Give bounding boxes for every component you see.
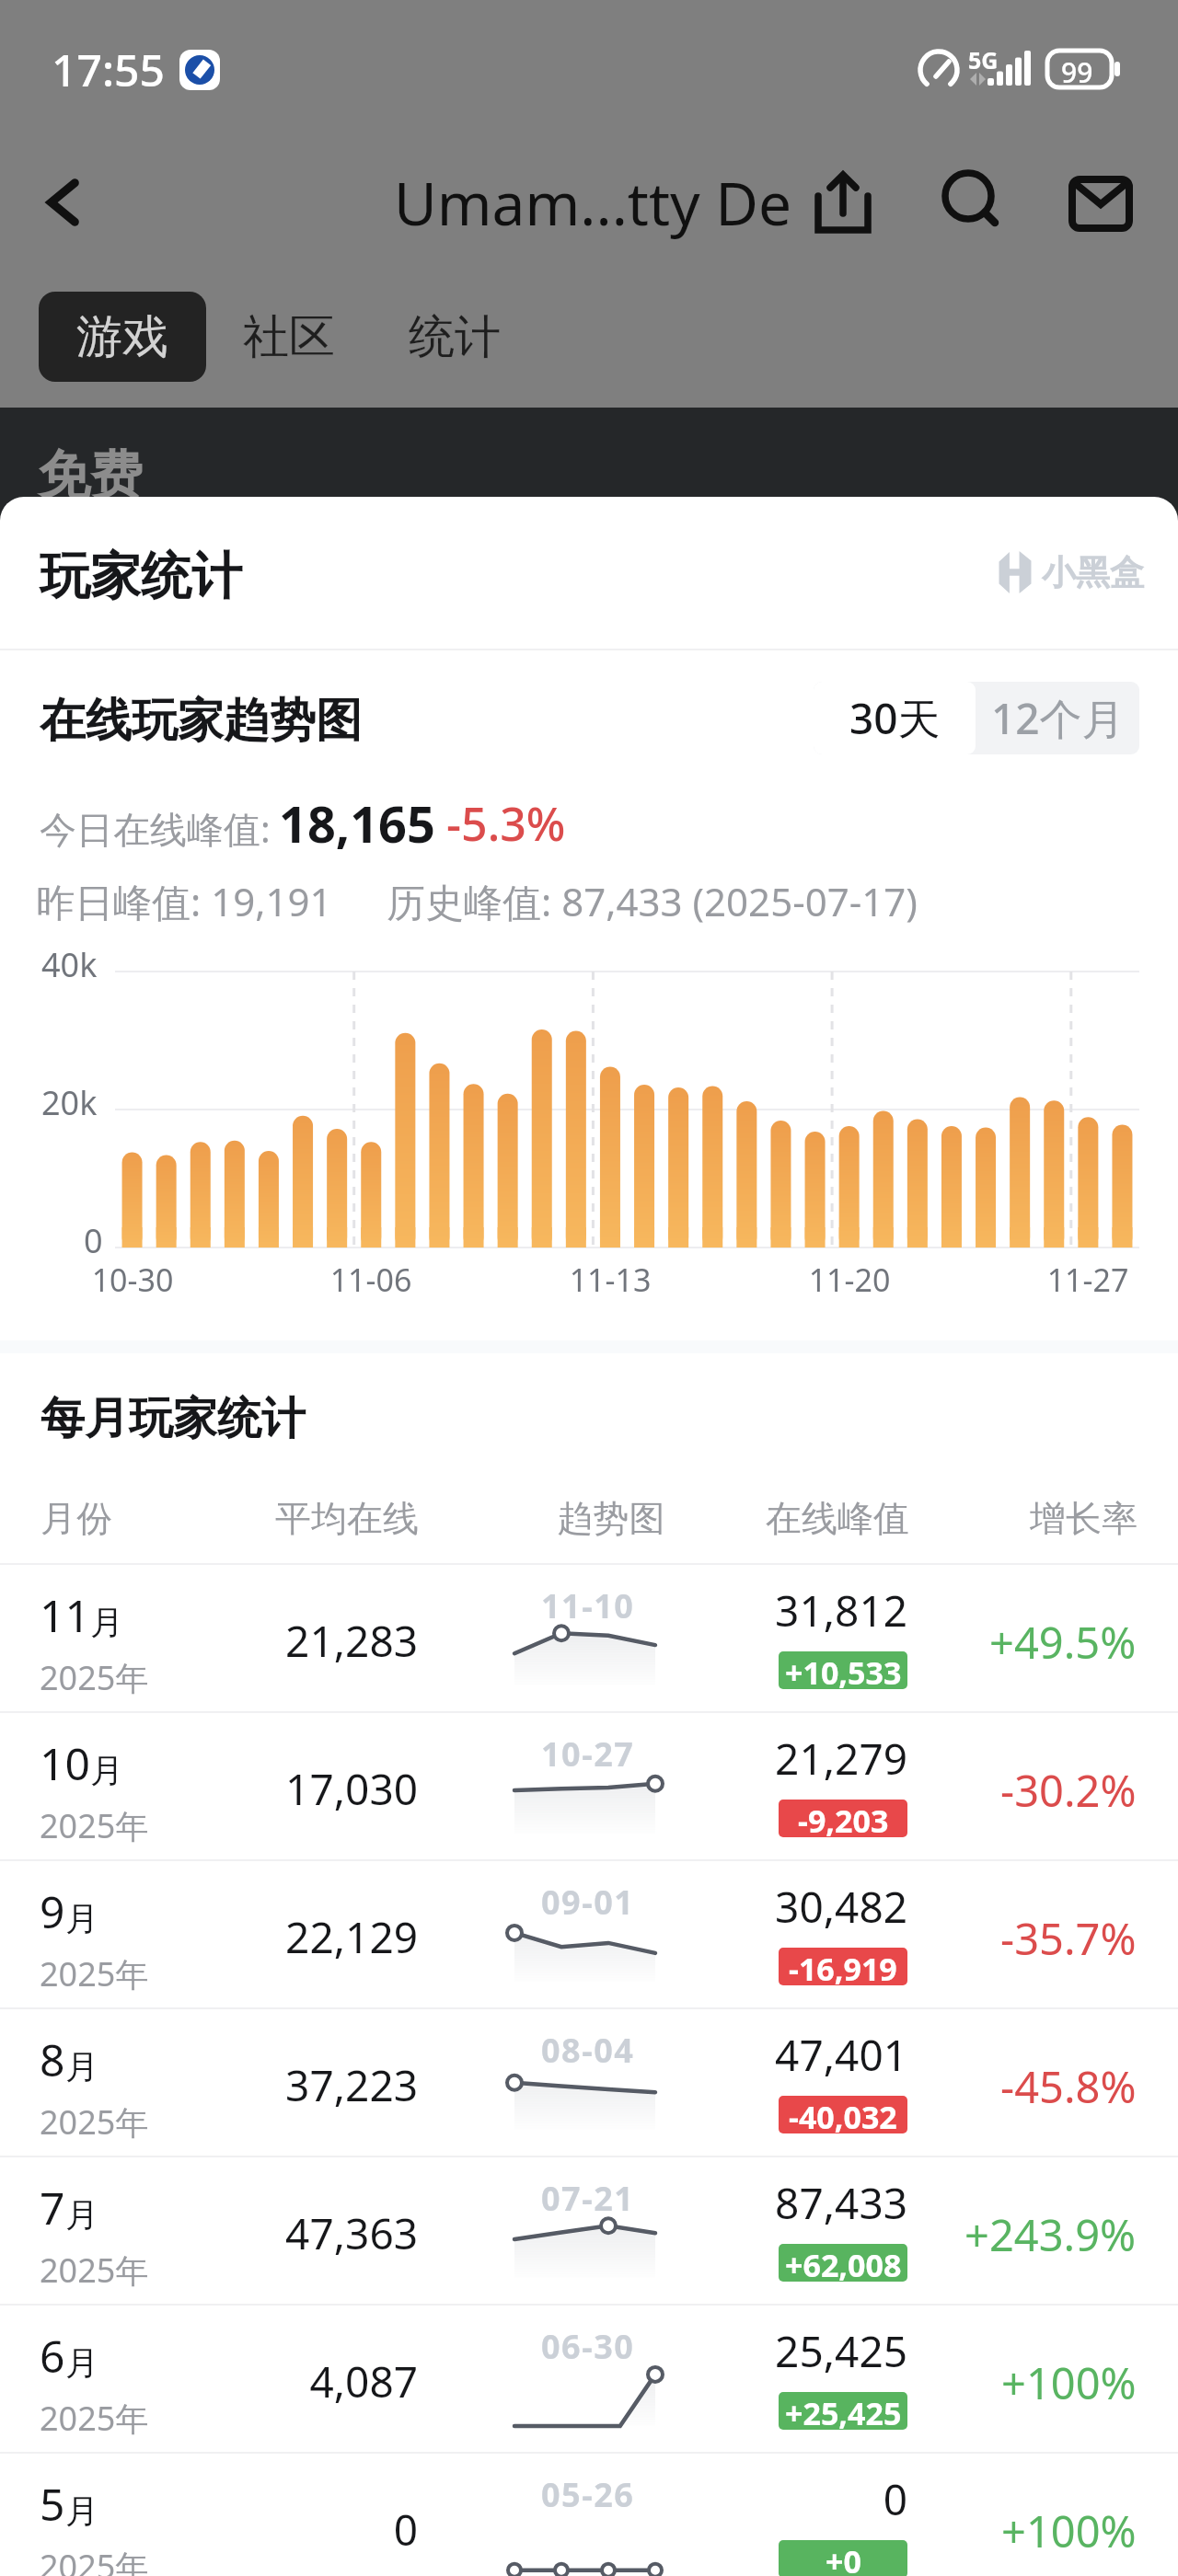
button[interactable]: 9 xyxy=(0,1861,1178,2007)
staticText: 5 xyxy=(40,2474,65,2534)
button[interactable]: 11 xyxy=(0,1565,1178,1711)
staticText: 37,223 xyxy=(179,2056,418,2114)
button[interactable]: 12个月 xyxy=(976,682,1139,754)
button[interactable]: Back xyxy=(22,138,105,267)
button[interactable]: Messages xyxy=(1066,167,1136,237)
staticText: 平均在线 xyxy=(227,1496,467,1541)
staticText: 6 xyxy=(40,2326,65,2386)
staticText: 小黑盒 xyxy=(1042,551,1144,594)
staticText: 月 xyxy=(65,2194,98,2236)
staticText: +10,533 xyxy=(785,1651,902,1689)
staticText: +100% xyxy=(1001,2353,1137,2412)
staticText: 2025年 xyxy=(40,1951,149,1996)
staticText: 47,363 xyxy=(179,2204,418,2262)
staticText: -40,032 xyxy=(789,2096,897,2133)
staticText: -30.2% xyxy=(1000,1761,1137,1820)
staticText: 10 xyxy=(40,1733,90,1793)
staticText: 40k xyxy=(41,942,98,987)
button[interactable]: 社区 xyxy=(236,292,342,382)
staticText: 在线玩家趋势图 xyxy=(40,692,362,750)
staticText: +243.9% xyxy=(964,2205,1137,2264)
staticText: 4,087 xyxy=(179,2352,418,2410)
staticText: 月 xyxy=(65,2342,98,2384)
staticText: 18,165 xyxy=(279,789,435,857)
button[interactable]: 7 xyxy=(0,2157,1178,2304)
staticText: 47,401 xyxy=(687,2026,907,2084)
staticText: 社区 xyxy=(243,308,335,366)
staticText: 每月玩家统计 xyxy=(40,1391,306,1446)
staticText: 2025年 xyxy=(40,2248,149,2293)
staticText: -9,203 xyxy=(798,1800,889,1837)
button[interactable]: 6 xyxy=(0,2306,1178,2452)
staticText: +0 xyxy=(826,2540,861,2576)
staticText: -45.8% xyxy=(1000,2057,1137,2116)
staticText: 玩家统计 xyxy=(40,545,242,608)
staticText: 07-21 xyxy=(541,2176,635,2221)
button[interactable]: Share xyxy=(808,167,878,237)
staticText: -5.3% xyxy=(446,792,566,855)
button[interactable]: 10 xyxy=(0,1713,1178,1859)
staticText: 游戏 xyxy=(76,308,168,366)
staticText: 10-30 xyxy=(59,1259,206,1301)
staticText: 8 xyxy=(40,2030,65,2089)
staticText: 2025年 xyxy=(40,2544,149,2576)
staticText: 在线峰值 xyxy=(718,1496,957,1541)
staticText: 2025年 xyxy=(40,1655,149,1700)
staticText: 05-26 xyxy=(541,2472,635,2517)
button[interactable]: 5 xyxy=(0,2454,1178,2576)
staticText: 月 xyxy=(65,1898,98,1939)
staticText: 昨日峰值: 19,191 xyxy=(36,875,332,927)
staticText: 22,129 xyxy=(179,1908,418,1966)
staticText: 0 xyxy=(687,2470,907,2528)
staticText: 08-04 xyxy=(541,2028,635,2073)
staticText: 06-30 xyxy=(541,2324,635,2369)
staticText: 11-13 xyxy=(537,1259,684,1301)
staticText: 17:55 xyxy=(52,40,165,99)
staticText: 2025年 xyxy=(40,1803,149,1848)
staticText: 20k xyxy=(41,1080,98,1125)
button[interactable]: 30天 xyxy=(814,682,976,754)
staticText: +25,425 xyxy=(785,2392,902,2430)
staticText: 2025年 xyxy=(40,2099,149,2145)
staticText: 0 xyxy=(84,1218,103,1263)
button[interactable]: Search xyxy=(938,167,1008,237)
staticText: 月 xyxy=(65,2490,98,2532)
staticText: 11-06 xyxy=(297,1259,445,1301)
staticText: 11-10 xyxy=(541,1583,635,1628)
staticText: 12个月 xyxy=(991,689,1125,747)
staticText: 9 xyxy=(40,1881,65,1941)
staticText: 2025年 xyxy=(40,2396,149,2441)
staticText: 趋势图 xyxy=(510,1496,712,1541)
staticText: 免费 xyxy=(38,443,143,509)
staticText: 月 xyxy=(65,2046,98,2087)
staticText: 月 xyxy=(90,1750,123,1791)
staticText: 30天 xyxy=(849,689,941,747)
staticText: 17,030 xyxy=(179,1760,418,1818)
staticText: 月份 xyxy=(40,1496,112,1541)
staticText: +100% xyxy=(1001,2501,1137,2560)
staticText: 今日在线峰值: xyxy=(40,803,271,854)
staticText: +62,008 xyxy=(785,2244,902,2282)
staticText: 25,425 xyxy=(687,2322,907,2380)
staticText: 09-01 xyxy=(541,1880,635,1925)
staticText: 统计 xyxy=(409,308,501,366)
staticText: 5G xyxy=(968,44,999,75)
button[interactable]: 8 xyxy=(0,2009,1178,2156)
staticText: 99 xyxy=(1061,53,1093,91)
staticText: Umam...tty De xyxy=(394,163,792,243)
staticText: 增长率 xyxy=(1030,1496,1138,1541)
staticText: 0 xyxy=(179,2501,418,2559)
button[interactable]: 游戏 xyxy=(39,292,206,382)
button[interactable]: 统计 xyxy=(401,292,508,382)
staticText: 月 xyxy=(90,1602,123,1643)
staticText: 11-20 xyxy=(776,1259,923,1301)
staticText: -35.7% xyxy=(1000,1909,1137,1968)
staticText: 21,279 xyxy=(687,1730,907,1788)
staticText: 31,812 xyxy=(687,1581,907,1639)
staticText: 30,482 xyxy=(687,1878,907,1936)
staticText: 87,433 xyxy=(687,2174,907,2232)
staticText: 10-27 xyxy=(541,1731,635,1777)
staticText: 21,283 xyxy=(179,1612,418,1670)
staticText: 7 xyxy=(40,2178,65,2237)
staticText: +49.5% xyxy=(989,1613,1137,1672)
